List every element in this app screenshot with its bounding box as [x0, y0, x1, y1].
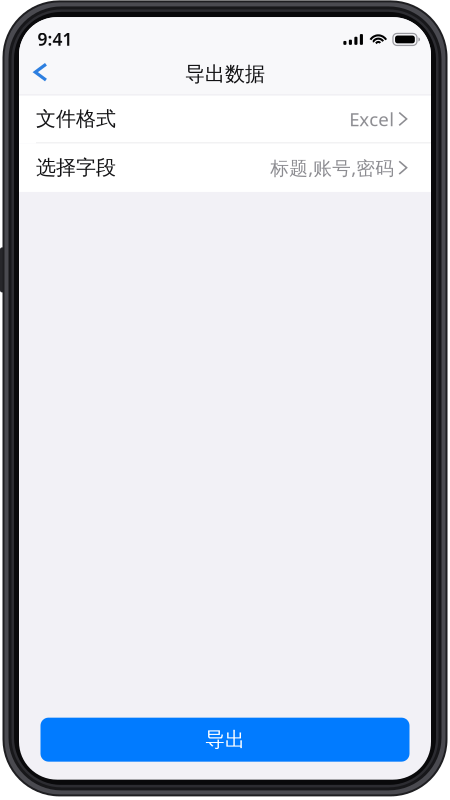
staticText: Excel — [349, 107, 394, 131]
button[interactable]: Back — [18, 50, 62, 94]
button[interactable]: 文件格式 — [19, 95, 431, 143]
staticText: 文件格式 — [36, 107, 116, 131]
staticText: 标题,账号,密码 — [270, 155, 394, 180]
staticText: 9:41 — [37, 27, 72, 50]
staticText: 选择字段 — [36, 155, 116, 180]
button[interactable]: 导出 — [40, 718, 409, 762]
button[interactable]: 选择字段 — [19, 143, 431, 192]
staticText: 导出数据 — [185, 62, 265, 86]
staticText: 导出 — [205, 727, 245, 752]
